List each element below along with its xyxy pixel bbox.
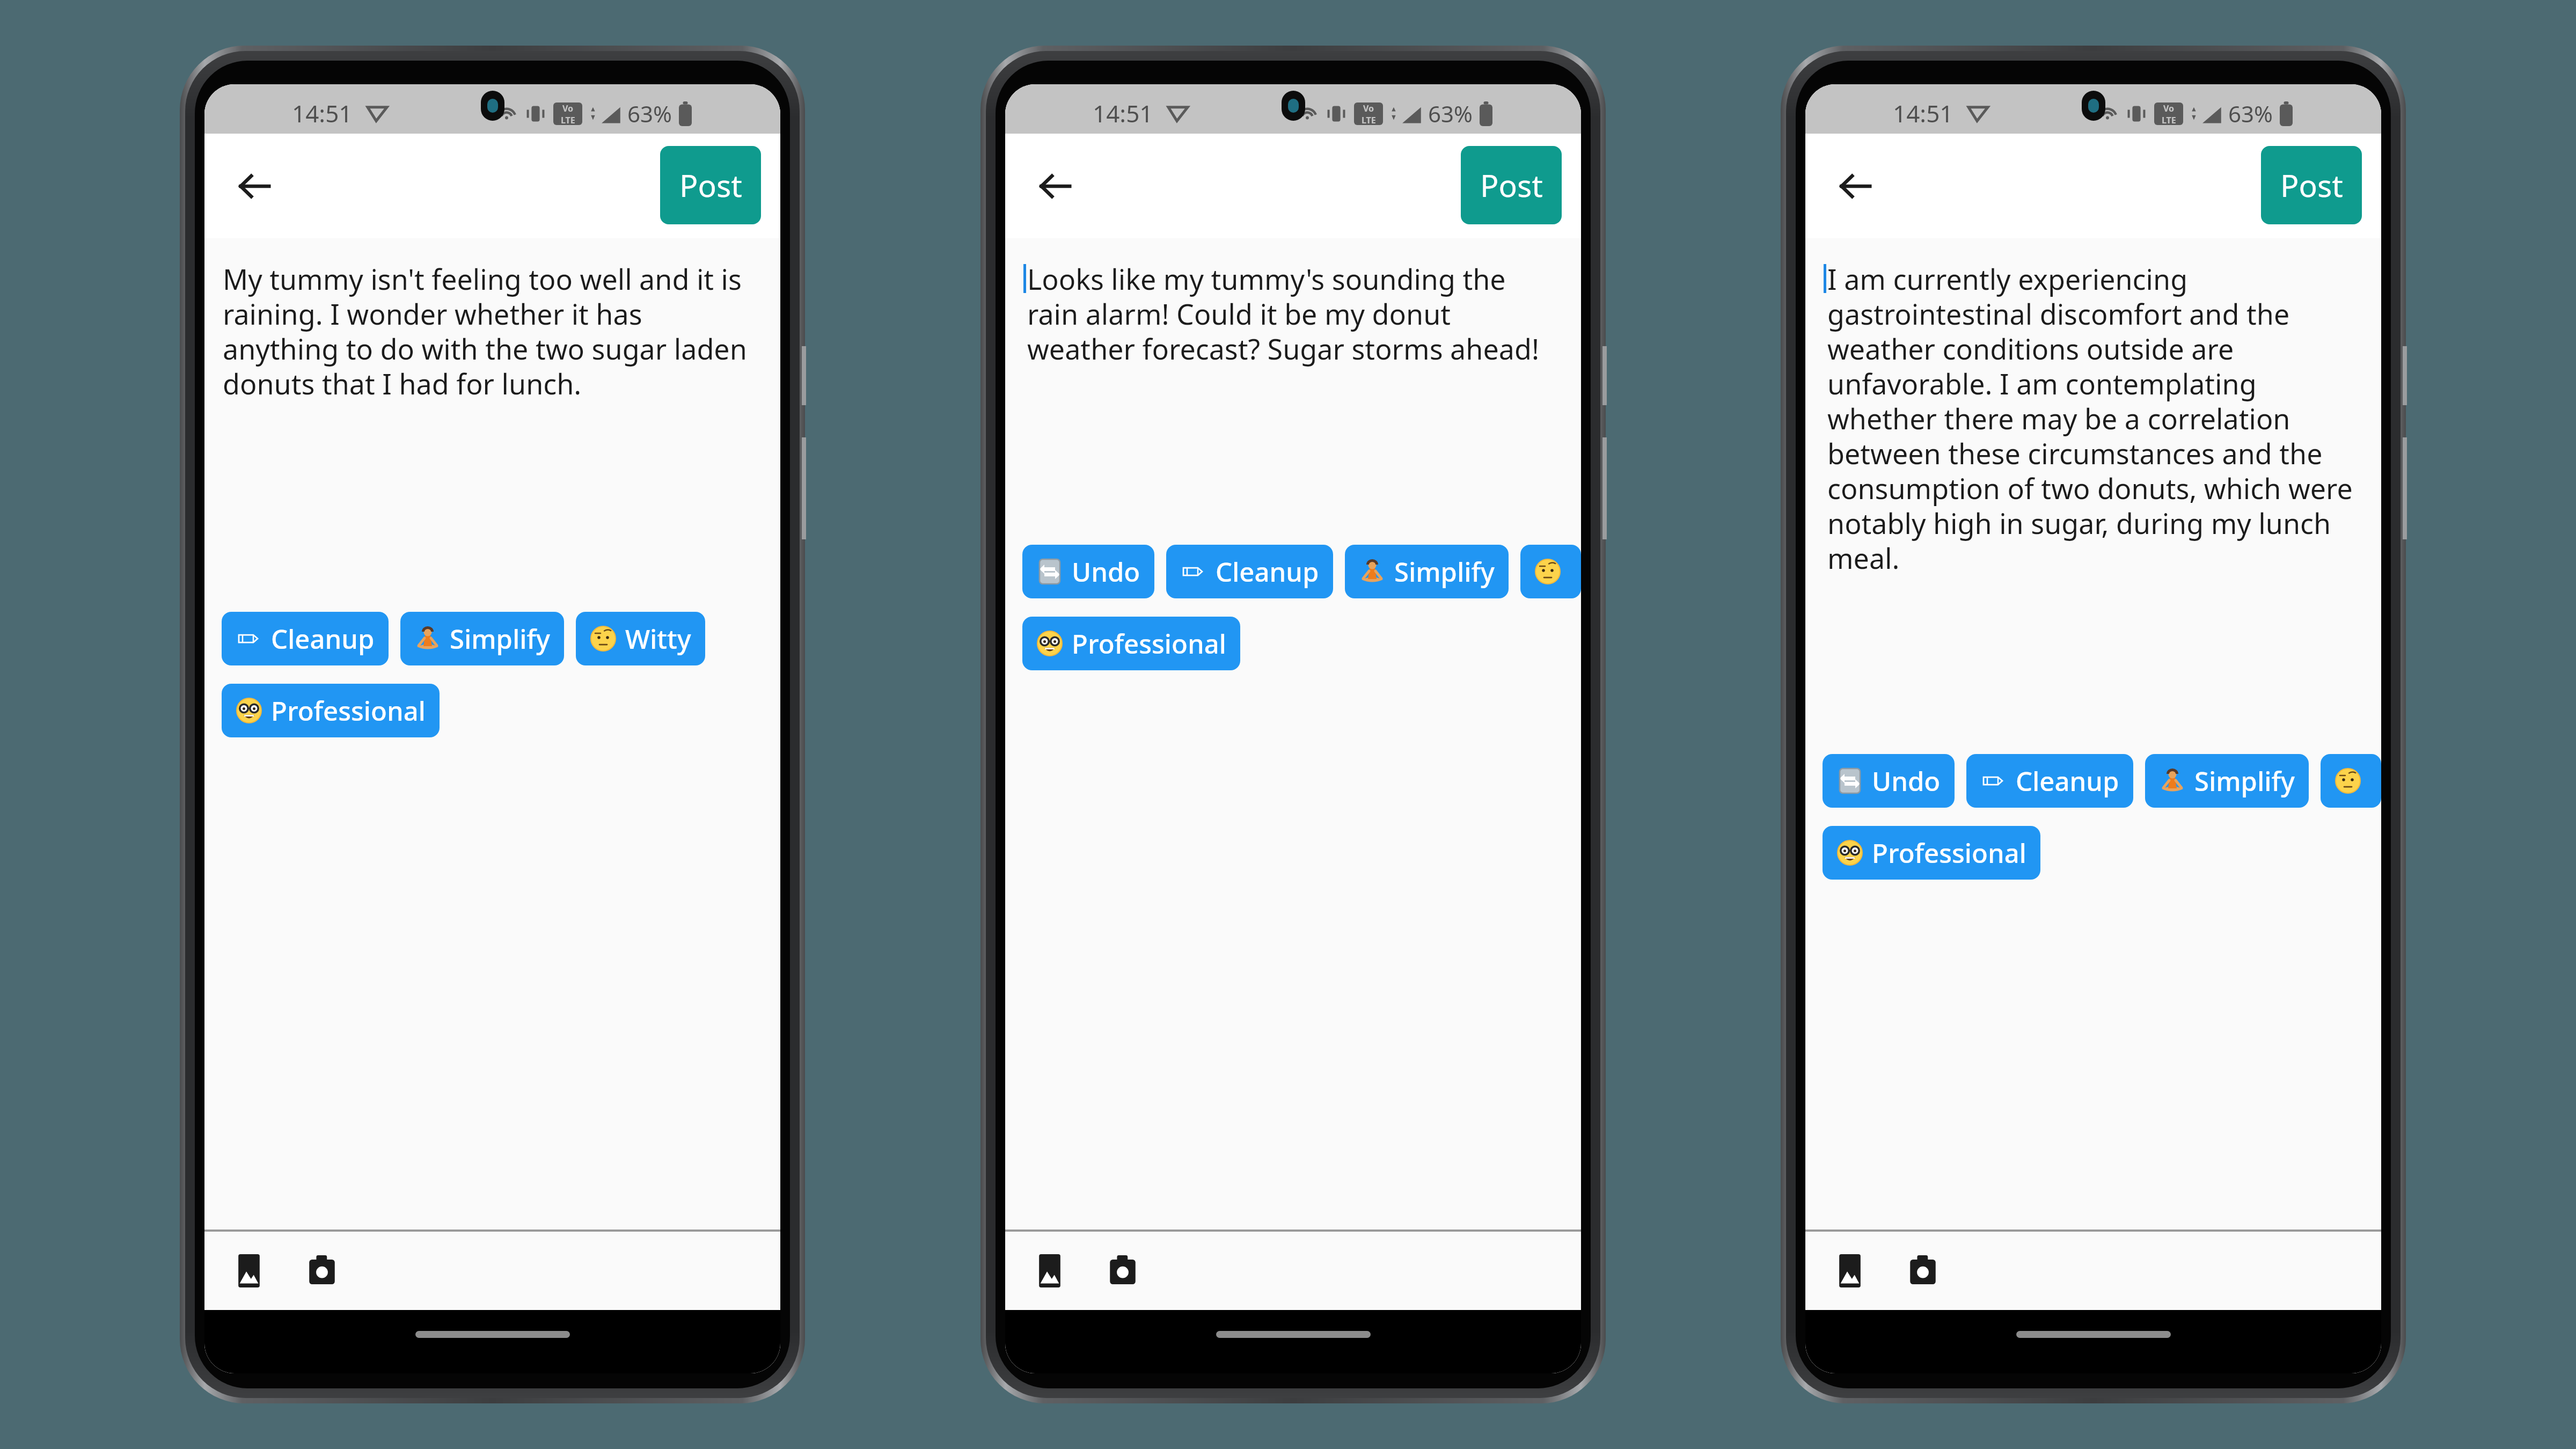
staticText: Simplify — [450, 621, 550, 657]
button[interactable]: Cleanup — [1166, 545, 1333, 598]
button[interactable]: Witty — [2321, 754, 2381, 808]
staticText: LTE — [1362, 114, 1376, 125]
staticText: My tummy isn't feeling too well and it i… — [223, 260, 753, 402]
button[interactable]: Add image — [1820, 1241, 1879, 1300]
staticText: Witty — [625, 621, 691, 657]
staticText: Vo — [562, 103, 574, 114]
button[interactable]: Post — [2261, 146, 2362, 224]
staticText: I am currently experiencing gastrointest… — [1827, 260, 2354, 577]
staticText: Cleanup — [2016, 763, 2119, 799]
staticText: Post — [2280, 164, 2343, 206]
button[interactable]: Simplify — [1345, 545, 1509, 598]
button[interactable]: Simplify — [400, 612, 564, 665]
staticText: Vo — [2163, 103, 2175, 114]
staticText: Looks like my tummy's sounding the rain … — [1027, 260, 1554, 368]
staticText: Professional — [1072, 626, 1226, 662]
staticText: 63% — [2228, 98, 2273, 129]
staticText: Undo — [1872, 763, 1941, 799]
button[interactable]: Take photo — [292, 1241, 352, 1300]
staticText: LTE — [561, 114, 575, 125]
staticText: Professional — [271, 693, 426, 729]
staticText: 14:51 — [292, 97, 353, 129]
button[interactable]: Cleanup — [1966, 754, 2133, 808]
button[interactable]: Simplify — [2145, 754, 2309, 808]
button[interactable]: Post — [660, 146, 761, 224]
staticText: 63% — [627, 98, 672, 129]
button[interactable]: Add image — [1020, 1241, 1079, 1300]
button[interactable]: Cleanup — [222, 612, 389, 665]
button[interactable]: Take photo — [1093, 1241, 1152, 1300]
button[interactable]: Witty — [576, 612, 705, 665]
staticText: Cleanup — [1216, 554, 1319, 590]
button[interactable]: Take photo — [1893, 1241, 1952, 1300]
staticText: 14:51 — [1893, 97, 1953, 129]
staticText: Vo — [1363, 103, 1374, 114]
staticText: LTE — [2162, 114, 2176, 125]
staticText: Post — [1480, 164, 1543, 206]
button[interactable]: Professional — [1823, 826, 2040, 880]
staticText: Simplify — [1394, 554, 1495, 590]
button[interactable]: Undo — [1022, 545, 1154, 598]
button[interactable]: Post — [1461, 146, 1562, 224]
button[interactable]: Professional — [1022, 617, 1240, 670]
button[interactable]: Back — [1023, 155, 1087, 218]
staticText: 63% — [1428, 98, 1473, 129]
button[interactable]: Add image — [219, 1241, 279, 1300]
staticText: Simplify — [2194, 763, 2295, 799]
staticText: 14:51 — [1093, 97, 1153, 129]
staticText: Professional — [1872, 835, 2026, 871]
button[interactable]: Witty — [1520, 545, 1581, 598]
staticText: Post — [679, 164, 742, 206]
button[interactable]: Back — [1824, 155, 1887, 218]
staticText: Undo — [1072, 554, 1140, 590]
button[interactable]: Back — [223, 155, 286, 218]
button[interactable]: Professional — [222, 684, 440, 737]
staticText: Cleanup — [271, 621, 375, 657]
button[interactable]: Undo — [1823, 754, 1955, 808]
